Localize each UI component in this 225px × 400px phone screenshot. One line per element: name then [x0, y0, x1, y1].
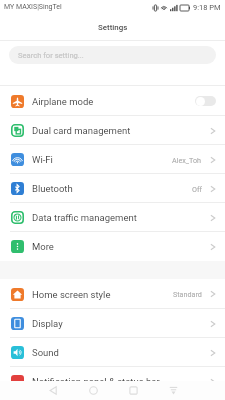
staticText: Data traffic management	[32, 212, 137, 223]
button[interactable]: Wi-Fi	[0, 145, 225, 174]
button[interactable]: More	[0, 232, 225, 261]
button[interactable]: Hide navigation bar	[153, 381, 193, 400]
staticText: Settings	[98, 23, 128, 32]
staticText: MY MAXIS|SingTel	[4, 3, 62, 11]
button[interactable]: Dual card management	[0, 116, 225, 145]
staticText: Standard	[173, 290, 202, 298]
staticText: Off	[192, 185, 202, 193]
staticText: 9:18 PM	[193, 3, 221, 12]
staticText: Dual card management	[32, 125, 131, 136]
staticText: Wi-Fi	[32, 154, 53, 165]
button[interactable]: Data traffic management	[0, 203, 225, 232]
button[interactable]: Airplane mode toggle	[195, 96, 216, 106]
button[interactable]: Airplane mode	[0, 86, 225, 116]
button[interactable]: Recent apps	[113, 381, 153, 400]
staticText: Display	[32, 318, 63, 329]
staticText: Notification panel & status bar	[32, 376, 160, 387]
button[interactable]: Display	[0, 309, 225, 338]
staticText: Bluetooth	[32, 183, 73, 194]
staticText: Sound	[32, 347, 59, 358]
staticText: Home screen style	[32, 289, 111, 300]
button[interactable]: Home	[73, 381, 113, 400]
button[interactable]: Search for setting...	[9, 46, 216, 64]
button[interactable]: Notification panel & status bar	[0, 367, 225, 396]
staticText: Alex_Toh	[172, 156, 202, 164]
button[interactable]: Back	[33, 381, 73, 400]
button[interactable]: Sound	[0, 338, 225, 367]
button[interactable]: Home screen style	[0, 279, 225, 309]
staticText: Search for setting...	[18, 51, 84, 60]
staticText: Airplane mode	[32, 96, 94, 107]
staticText: More	[32, 241, 54, 252]
button[interactable]: Bluetooth	[0, 174, 225, 203]
